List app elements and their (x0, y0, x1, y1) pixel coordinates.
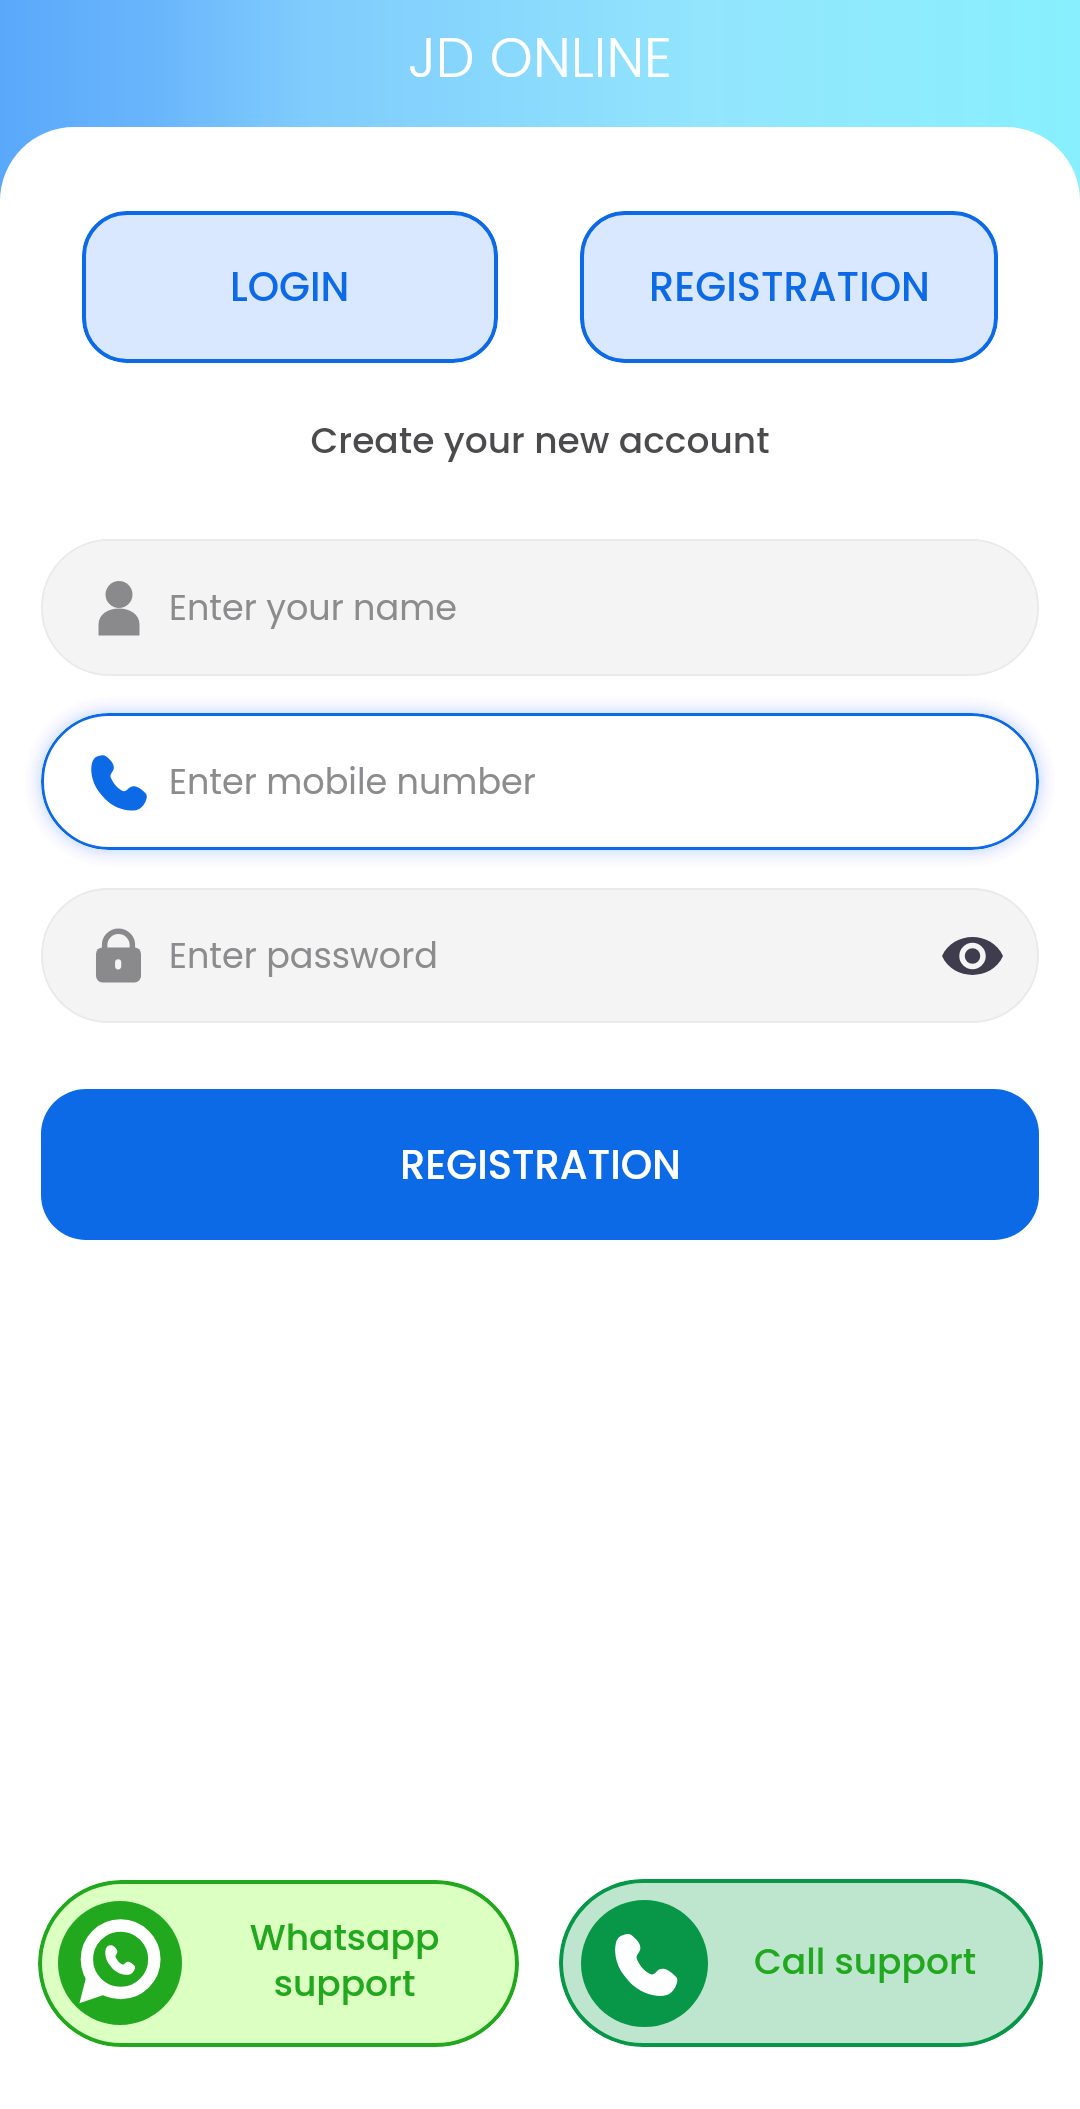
staticText: REGISTRATION (649, 259, 930, 315)
staticText: Whatsapp support (186, 1912, 503, 2009)
staticText: Enter password (169, 931, 438, 980)
button[interactable]: REGISTRATION (41, 1089, 1039, 1240)
staticText: REGISTRATION (400, 1137, 681, 1193)
staticText: Enter your name (169, 583, 457, 632)
button[interactable]: Enter mobile number (41, 713, 1039, 850)
button[interactable]: LOGIN (82, 211, 498, 363)
staticText: Call support (706, 1936, 1024, 1986)
button[interactable]: Call support (559, 1879, 1043, 2047)
staticText: JD ONLINE (0, 19, 1080, 96)
button[interactable]: Show password (936, 920, 1008, 992)
staticText: Create your new account (0, 415, 1080, 465)
button[interactable]: Enter your name (41, 539, 1039, 676)
staticText: Enter mobile number (169, 757, 536, 806)
button[interactable]: Enter password (41, 888, 1039, 1023)
button[interactable]: REGISTRATION (580, 211, 998, 363)
button[interactable]: Whatsapp support (38, 1880, 519, 2047)
staticText: LOGIN (230, 259, 350, 315)
